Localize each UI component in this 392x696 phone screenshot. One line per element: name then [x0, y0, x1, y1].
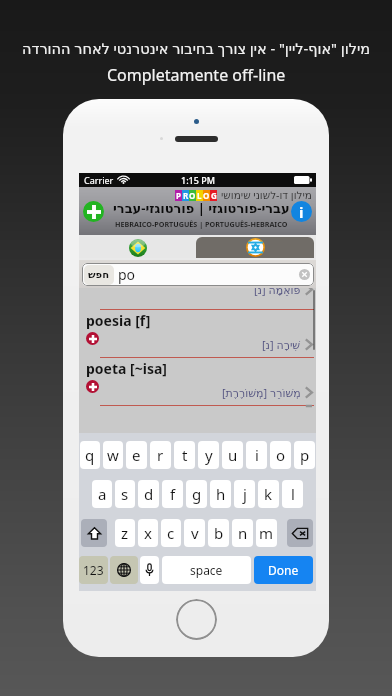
button[interactable]: Numbers — [79, 556, 108, 584]
button[interactable]: d — [138, 480, 159, 508]
button[interactable]: space — [162, 556, 251, 584]
staticText: HEBRAICO-PORTUGUÊS | PORTUGUÊS-HEBRAICO — [115, 219, 288, 229]
button[interactable]: b — [208, 519, 229, 547]
staticText: s — [121, 484, 129, 504]
button[interactable]: Hebrew to Portuguese — [196, 237, 314, 258]
button[interactable]: h — [210, 480, 231, 508]
staticText: a — [98, 484, 107, 504]
staticText: i — [299, 202, 304, 222]
button[interactable]: poesia [f] — [79, 309, 316, 357]
button[interactable]: v — [184, 519, 205, 547]
button[interactable]: Dictate — [140, 556, 159, 584]
staticText: Carrier — [84, 174, 114, 186]
button[interactable]: Done — [254, 556, 313, 584]
staticText: מילון "אוף-ליין" - אין צורך בחיבור אינטר… — [22, 38, 371, 58]
staticText: מְשׁוֹרֵר [מְשׁוֹרֶרֶת] — [222, 385, 301, 400]
button[interactable]: f — [162, 480, 183, 508]
staticText: Completamente off-line — [107, 64, 286, 86]
button[interactable]: i — [246, 441, 267, 469]
staticText: po — [118, 265, 136, 284]
button[interactable]: Change language — [110, 556, 138, 584]
button[interactable]: n — [232, 519, 253, 547]
staticText: c — [167, 523, 175, 543]
staticText: e — [132, 445, 141, 465]
staticText: v — [191, 523, 199, 543]
button[interactable]: Search — [84, 265, 114, 285]
staticText: w — [107, 445, 119, 465]
staticText: poesia [f] — [86, 311, 151, 330]
staticText: space — [190, 562, 223, 578]
button[interactable]: o — [270, 441, 291, 469]
staticText: poeta [~isa] — [86, 359, 167, 378]
button[interactable]: k — [258, 480, 279, 508]
staticText: L — [197, 190, 202, 201]
staticText: x — [144, 523, 152, 543]
button[interactable]: Shift — [81, 519, 107, 547]
button[interactable]: t — [174, 441, 195, 469]
button[interactable]: p — [294, 441, 315, 469]
button[interactable]: Add word — [83, 201, 104, 222]
button[interactable]: r — [150, 441, 171, 469]
button[interactable]: x — [138, 519, 158, 547]
staticText: k — [264, 484, 273, 504]
staticText: g — [192, 484, 202, 504]
staticText: z — [121, 523, 129, 543]
staticText: G — [211, 190, 217, 201]
staticText: o — [276, 445, 286, 465]
button[interactable]: u — [222, 441, 243, 469]
staticText: R — [183, 190, 189, 201]
button[interactable]: Backspace — [287, 519, 313, 547]
staticText: t — [182, 445, 188, 465]
button[interactable]: l — [282, 480, 303, 508]
staticText: שִׁירָה [נ] — [262, 337, 301, 352]
button[interactable]: z — [115, 519, 135, 547]
staticText: j — [243, 484, 247, 504]
staticText: n — [238, 523, 248, 543]
button[interactable]: q — [80, 441, 100, 469]
button[interactable]: m — [256, 519, 277, 547]
staticText: m — [259, 523, 274, 543]
button[interactable]: poeta [~isa] — [79, 357, 316, 405]
button[interactable]: Information — [291, 201, 312, 222]
button[interactable]: Add poeta to favourites — [86, 380, 99, 393]
button[interactable]: Clear text — [299, 269, 310, 280]
staticText: f — [170, 484, 176, 504]
button[interactable]: j — [234, 480, 255, 508]
button[interactable]: Add poesia to favourites — [86, 332, 99, 345]
staticText: r — [157, 445, 164, 465]
staticText: b — [214, 523, 224, 543]
staticText: O — [189, 190, 196, 201]
button[interactable]: e — [126, 441, 147, 469]
staticText: 1:15 PM — [181, 174, 215, 186]
staticText: u — [228, 445, 238, 465]
button[interactable]: c — [161, 519, 181, 547]
staticText: p — [300, 445, 310, 465]
button[interactable]: Portuguese to Hebrew — [79, 237, 196, 258]
staticText: l — [291, 484, 295, 504]
staticText: y — [205, 445, 213, 465]
button[interactable]: g — [186, 480, 207, 508]
staticText: 123 — [83, 562, 104, 578]
staticText: i — [255, 445, 259, 465]
button[interactable]: a — [92, 480, 112, 508]
staticText: d — [144, 484, 154, 504]
staticText: מילון דו-לשוני שימושי — [221, 188, 312, 202]
staticText: חפש — [88, 269, 110, 281]
staticText: q — [85, 445, 95, 465]
button[interactable]: s — [115, 480, 135, 508]
staticText: פּוֹאֵמָה [נ] — [254, 288, 301, 297]
staticText: h — [216, 484, 226, 504]
staticText: Done — [268, 562, 299, 578]
button[interactable]: w — [103, 441, 123, 469]
button[interactable]: poética [f] — [79, 405, 316, 406]
button[interactable]: y — [198, 441, 219, 469]
staticText: P — [176, 190, 181, 201]
staticText: O — [203, 190, 210, 201]
staticText: עברי-פורטוגזי | פורטוגזי-עברי — [113, 199, 290, 217]
